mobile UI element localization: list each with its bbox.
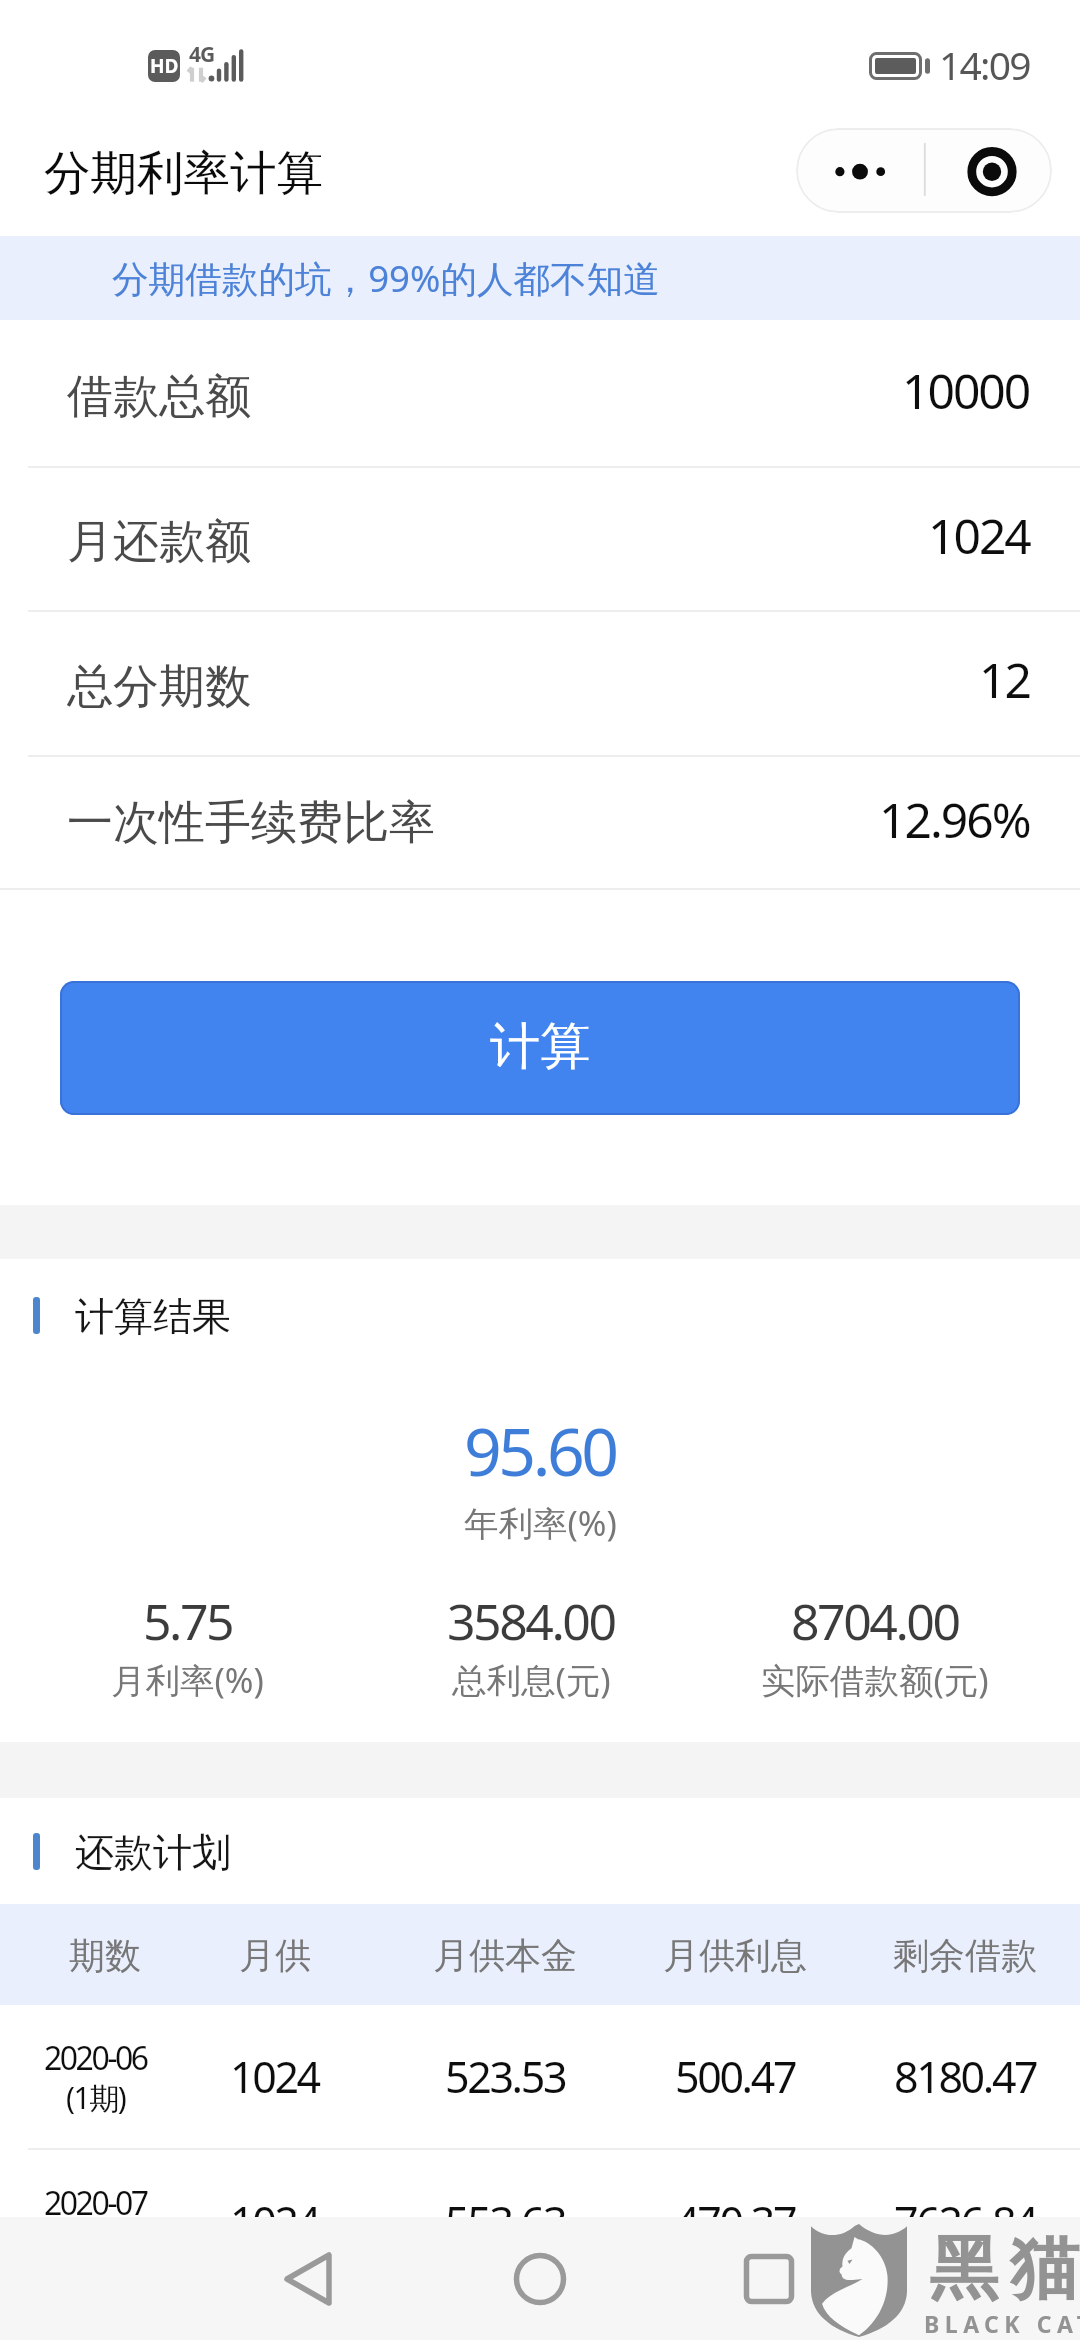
staticText: 553.63 [445,2192,566,2251]
button[interactable]: 计算 [60,981,1020,1115]
button[interactable]: 2020-07 [0,2150,1080,2293]
button[interactable]: 借款总额 [0,320,1080,468]
staticText: 10000 [902,358,1030,423]
staticText: 月还款额 [67,513,251,571]
button[interactable]: Recent apps [709,2217,829,2340]
staticText: 一次性手续费比率 [67,794,435,852]
staticText: 期数 [69,1933,141,1978]
staticText: 12 [979,647,1030,712]
button[interactable]: 分期借款的坑，99%的人都不知道 [0,236,1080,320]
staticText: 分期借款的坑，99%的人都不知道 [112,253,660,303]
button[interactable]: Back [248,2217,368,2340]
button[interactable]: Home [480,2217,600,2340]
staticText: 8704.00 [791,1587,959,1655]
staticText: 5.75 [143,1587,233,1655]
button[interactable]: 一次性手续费比率 [0,757,1080,890]
staticText: 523.53 [445,2047,566,2106]
staticText: 95.60 [464,1405,616,1495]
staticText: 计算 [490,1015,590,1078]
staticText: 黑猫 [923,2226,1080,2313]
button[interactable]: More options [796,128,1052,213]
staticText: 实际借款额(元) [761,1656,989,1703]
staticText: 3584.00 [447,1587,615,1655]
staticText: 4G [189,40,215,69]
staticText: 月供本金 [433,1933,577,1978]
button[interactable]: 月还款额 [0,468,1080,612]
staticText: HD [150,53,179,79]
staticText: 2020-07 [44,2181,147,2225]
staticText: 470.37 [675,2192,796,2251]
button[interactable]: 2020-06 [0,2005,1080,2148]
staticText: 总分期数 [67,658,251,716]
staticText: 1024 [230,2047,319,2106]
staticText: 月供利息 [663,1933,807,1978]
staticText: 分期利率计算 [44,144,323,203]
button[interactable]: 总分期数 [0,612,1080,757]
staticText: 月供 [239,1933,311,1978]
staticText: 借款总额 [67,368,251,426]
staticText: 7626.84 [894,2192,1037,2251]
staticText: 总利息(元) [452,1656,611,1703]
staticText: 500.47 [675,2047,796,2106]
staticText: 剩余借款 [893,1933,1037,1978]
staticText: 1024 [230,2192,319,2251]
staticText: 还款计划 [75,1828,231,1877]
staticText: 12.96% [879,787,1030,852]
staticText: 8180.47 [894,2047,1037,2106]
staticText: 1024 [928,503,1030,568]
staticText: 14:09 [939,38,1030,91]
staticText: 计算结果 [75,1292,231,1341]
staticText: BLACK CAT [924,2308,1080,2339]
staticText: 月利率(%) [111,1656,264,1703]
staticText: 2020-06 [44,2036,147,2080]
staticText: 年利率(%) [464,1499,617,1546]
staticText: (1期) [66,2077,126,2118]
